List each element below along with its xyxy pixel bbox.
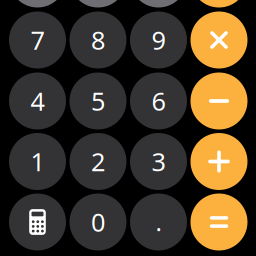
staticText: 5 <box>91 84 105 118</box>
button[interactable]: Equals <box>190 193 247 250</box>
button[interactable]: 8 <box>69 11 126 68</box>
staticText: 0 <box>91 205 105 239</box>
button[interactable]: 9 <box>130 11 187 68</box>
button[interactable]: Subtract <box>190 72 247 129</box>
button[interactable]: 0 <box>69 193 126 250</box>
button[interactable]: Add <box>190 133 247 190</box>
staticText: 3 <box>151 145 165 178</box>
staticText: 4 <box>30 84 44 118</box>
button[interactable]: Tip split <box>9 193 66 250</box>
button[interactable]: Multiply <box>190 11 247 68</box>
staticText: 8 <box>91 23 105 57</box>
staticText: 9 <box>151 23 165 57</box>
button[interactable]: % <box>130 0 187 7</box>
staticText: 2 <box>91 145 105 178</box>
staticText: 1 <box>30 145 44 178</box>
button[interactable]: 5 <box>69 72 126 129</box>
button[interactable]: 3 <box>130 133 187 190</box>
button[interactable]: 1 <box>9 133 66 190</box>
button[interactable]: ± <box>69 0 126 7</box>
button[interactable]: AC <box>9 0 66 7</box>
button[interactable]: 6 <box>130 72 187 129</box>
button[interactable]: 2 <box>69 133 126 190</box>
staticText: 7 <box>30 23 44 57</box>
button[interactable]: 7 <box>9 11 66 68</box>
staticText: 6 <box>151 84 165 118</box>
button[interactable]: . <box>130 193 187 250</box>
button[interactable]: 4 <box>9 72 66 129</box>
staticText: . <box>155 206 161 238</box>
button[interactable]: Divide <box>190 0 247 7</box>
